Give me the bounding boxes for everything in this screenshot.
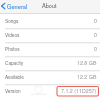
button[interactable]: Songs — [0, 14, 100, 28]
staticText: Videos — [5, 32, 20, 39]
staticText: 0 — [94, 17, 97, 25]
staticText: 12.8 GB — [77, 59, 97, 67]
staticText: Photos — [5, 46, 20, 53]
staticText: 7.1.2 (11D257) — [61, 87, 97, 95]
staticText: 0 — [94, 31, 97, 39]
button[interactable]: Version — [0, 84, 100, 98]
button[interactable]: Capacity — [0, 56, 100, 70]
staticText: About — [42, 2, 57, 10]
staticText: 0 — [94, 45, 97, 53]
staticText: 12.2 GB — [77, 73, 97, 81]
button[interactable]: Photos — [0, 42, 100, 56]
staticText: Version — [5, 88, 21, 95]
staticText: Songs — [5, 18, 19, 25]
button[interactable]: Back to General — [0, 1, 29, 11]
staticText: Available — [5, 74, 24, 81]
staticText: General — [7, 2, 28, 10]
staticText: Capacity — [5, 60, 24, 67]
button[interactable]: Available — [0, 70, 100, 84]
button[interactable]: Videos — [0, 28, 100, 42]
